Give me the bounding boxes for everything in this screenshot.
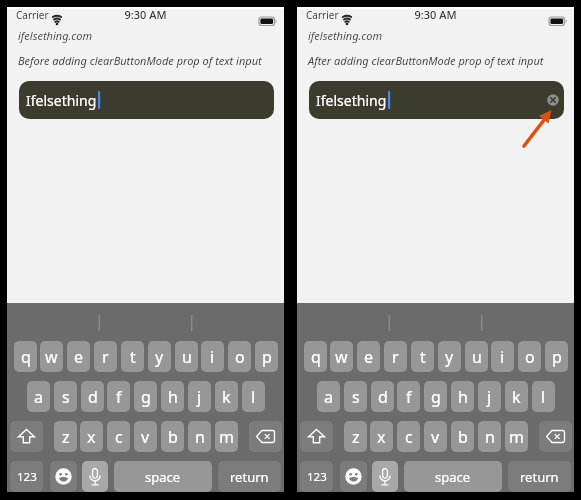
button[interactable]: r	[94, 341, 117, 372]
staticText: n	[485, 426, 495, 448]
button[interactable]	[249, 421, 282, 452]
button[interactable]	[50, 461, 77, 492]
button[interactable]: c	[397, 421, 420, 452]
button[interactable]: f	[397, 381, 420, 412]
button[interactable]: k	[215, 381, 238, 412]
button[interactable]: u	[175, 341, 198, 372]
button[interactable]: p	[545, 341, 568, 372]
button[interactable]: t	[121, 341, 144, 372]
staticText: m	[509, 426, 524, 448]
button[interactable]: v	[424, 421, 447, 452]
button[interactable]: a	[27, 381, 50, 412]
staticText: Ifelsething	[316, 91, 387, 110]
button[interactable]: i	[491, 341, 514, 372]
staticText: f	[406, 386, 412, 408]
staticText: o	[525, 346, 535, 368]
button[interactable]: w	[40, 341, 63, 372]
button[interactable]: h	[451, 381, 474, 412]
button[interactable]: space	[404, 461, 502, 492]
button[interactable]: t	[411, 341, 434, 372]
button[interactable]: Ifelsething	[19, 81, 274, 119]
staticText: v	[431, 426, 440, 448]
button[interactable]: p	[255, 341, 278, 372]
staticText: g	[431, 386, 441, 408]
button[interactable]: Ifelsething	[309, 81, 564, 119]
button[interactable]: b	[451, 421, 474, 452]
staticText: t	[130, 346, 136, 368]
button[interactable]: j	[478, 381, 501, 412]
staticText: b	[458, 426, 468, 448]
button[interactable]: g	[134, 381, 157, 412]
button[interactable]: return	[508, 461, 571, 492]
button[interactable]: k	[505, 381, 528, 412]
staticText: space	[435, 468, 471, 486]
button[interactable]	[10, 421, 43, 452]
button[interactable]	[539, 421, 572, 452]
button[interactable]: b	[161, 421, 184, 452]
button[interactable]: x	[370, 421, 393, 452]
staticText: r	[102, 346, 109, 368]
staticText: o	[235, 346, 245, 368]
staticText: e	[364, 346, 374, 368]
staticText: s	[352, 386, 360, 408]
button[interactable]: d	[81, 381, 104, 412]
button[interactable]: j	[188, 381, 211, 412]
button[interactable]: f	[107, 381, 130, 412]
button[interactable]: o	[228, 341, 251, 372]
button[interactable]: q	[304, 341, 327, 372]
button[interactable]: g	[424, 381, 447, 412]
staticText: w	[45, 346, 58, 368]
button[interactable]: q	[14, 341, 37, 372]
button[interactable]: a	[317, 381, 340, 412]
button[interactable]	[340, 461, 367, 492]
staticText: c	[405, 426, 413, 448]
staticText: n	[195, 426, 205, 448]
button[interactable]: h	[161, 381, 184, 412]
staticText: ifelsething.com	[18, 28, 93, 43]
button[interactable]	[300, 421, 333, 452]
staticText: j	[197, 386, 202, 408]
button[interactable]: return	[218, 461, 281, 492]
button[interactable]: 123	[10, 461, 43, 492]
staticText: 9:30 AM	[7, 7, 284, 22]
button[interactable]: l	[242, 381, 265, 412]
button[interactable]: x	[80, 421, 103, 452]
staticText: y	[445, 346, 454, 368]
staticText: 123	[17, 469, 37, 485]
button[interactable]: m	[215, 421, 238, 452]
button[interactable]: s	[344, 381, 367, 412]
button[interactable]: n	[478, 421, 501, 452]
button[interactable]: e	[67, 341, 90, 372]
button[interactable]: i	[201, 341, 224, 372]
staticText: q	[311, 346, 321, 368]
staticText: f	[116, 386, 122, 408]
staticText: q	[21, 346, 31, 368]
button[interactable]: y	[438, 341, 461, 372]
staticText: return	[230, 468, 269, 486]
button[interactable]: z	[54, 421, 77, 452]
button[interactable]: u	[465, 341, 488, 372]
button[interactable]: w	[330, 341, 353, 372]
button[interactable]: s	[54, 381, 77, 412]
button[interactable]: n	[188, 421, 211, 452]
staticText: a	[324, 386, 333, 408]
button[interactable]: m	[505, 421, 528, 452]
button[interactable]: e	[357, 341, 380, 372]
button[interactable]: c	[107, 421, 130, 452]
button[interactable]: y	[148, 341, 171, 372]
staticText: j	[487, 386, 492, 408]
button[interactable]	[372, 461, 398, 492]
button[interactable]	[82, 461, 108, 492]
button[interactable]: z	[344, 421, 367, 452]
staticText: v	[141, 426, 150, 448]
button[interactable]: d	[371, 381, 394, 412]
button[interactable]: space	[114, 461, 212, 492]
staticText: k	[222, 386, 231, 408]
staticText: u	[182, 346, 192, 368]
button[interactable]: l	[532, 381, 555, 412]
staticText: r	[392, 346, 399, 368]
button[interactable]: o	[518, 341, 541, 372]
button[interactable]: v	[134, 421, 157, 452]
button[interactable]: r	[384, 341, 407, 372]
button[interactable]: 123	[300, 461, 333, 492]
